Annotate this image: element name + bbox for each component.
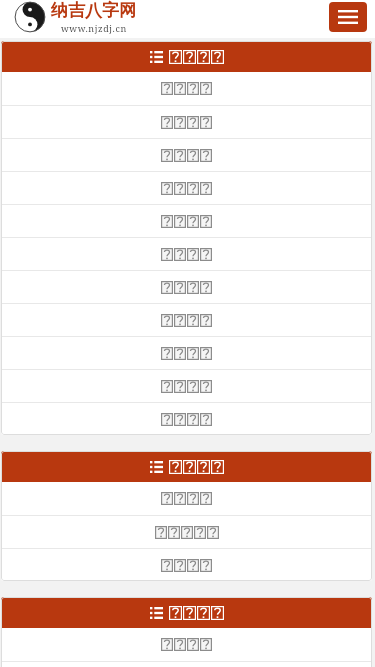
staticText: www.njzdj.cn [61,22,127,34]
button[interactable] [1,628,372,661]
button[interactable] [1,516,372,548]
button[interactable]: 纳吉八字网 [14,0,136,34]
staticText: 纳吉八字网 [51,0,136,21]
button[interactable] [1,337,372,369]
button[interactable] [1,370,372,402]
button[interactable] [1,482,372,515]
button[interactable] [1,271,372,303]
button[interactable] [1,451,372,482]
button[interactable] [1,304,372,336]
button[interactable] [1,549,372,581]
button[interactable]: Menu [329,2,367,32]
button[interactable] [1,597,372,628]
button[interactable] [1,139,372,171]
button[interactable] [1,403,372,435]
button[interactable] [1,205,372,237]
button[interactable] [1,41,372,72]
button[interactable] [1,238,372,270]
button[interactable] [1,72,372,105]
button[interactable] [1,172,372,204]
button[interactable] [1,106,372,138]
